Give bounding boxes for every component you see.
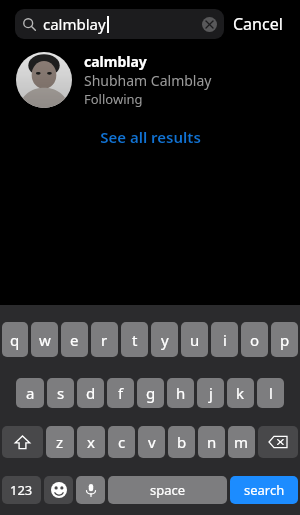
staticText: a bbox=[26, 383, 35, 403]
staticText: t bbox=[132, 330, 138, 350]
staticText: x bbox=[87, 432, 95, 452]
staticText: h bbox=[176, 383, 186, 403]
button[interactable]: f bbox=[107, 378, 134, 408]
button[interactable]: z bbox=[46, 426, 74, 458]
staticText: i bbox=[223, 330, 227, 350]
staticText: q bbox=[10, 330, 20, 350]
staticText: y bbox=[161, 330, 169, 350]
button[interactable]: y bbox=[151, 322, 178, 357]
button[interactable]: o bbox=[241, 322, 268, 357]
button[interactable]: See all results bbox=[0, 122, 300, 152]
staticText: Following bbox=[84, 90, 143, 108]
staticText: z bbox=[56, 432, 64, 452]
staticText: See all results bbox=[100, 127, 201, 147]
staticText: Shubham Calmblay bbox=[84, 71, 212, 90]
staticText: c bbox=[118, 432, 126, 452]
button[interactable]: a bbox=[16, 378, 44, 408]
staticText: k bbox=[236, 383, 245, 403]
staticText: r bbox=[101, 330, 108, 350]
button[interactable]: Shift bbox=[2, 426, 43, 458]
button[interactable]: x bbox=[77, 426, 105, 458]
staticText: p bbox=[280, 330, 290, 350]
button[interactable]: Voice input bbox=[76, 476, 105, 504]
staticText: n bbox=[207, 432, 217, 452]
button[interactable]: space bbox=[108, 476, 227, 504]
button[interactable]: p bbox=[271, 322, 298, 357]
button[interactable]: Clear search text bbox=[202, 17, 217, 32]
staticText: u bbox=[190, 330, 200, 350]
button[interactable]: e bbox=[61, 322, 88, 357]
button[interactable]: r bbox=[91, 322, 118, 357]
button[interactable]: 123 bbox=[2, 476, 41, 504]
button[interactable]: search bbox=[230, 476, 298, 504]
button[interactable]: j bbox=[197, 378, 224, 408]
button[interactable]: s bbox=[47, 378, 74, 408]
staticText: m bbox=[234, 432, 249, 452]
staticText: e bbox=[70, 330, 79, 350]
button[interactable]: h bbox=[167, 378, 194, 408]
staticText: d bbox=[86, 383, 96, 403]
button[interactable]: q bbox=[2, 322, 28, 357]
staticText: calmblay bbox=[84, 52, 147, 71]
staticText: l bbox=[269, 383, 273, 403]
button[interactable]: Backspace bbox=[258, 426, 298, 458]
button[interactable]: c bbox=[108, 426, 135, 458]
button[interactable]: calmblay bbox=[0, 48, 300, 112]
staticText: f bbox=[118, 383, 124, 403]
button[interactable]: l bbox=[257, 378, 284, 408]
staticText: 123 bbox=[10, 481, 33, 499]
staticText: b bbox=[177, 432, 187, 452]
staticText: calmblay bbox=[43, 14, 106, 34]
button[interactable]: calmblay bbox=[15, 9, 224, 39]
button[interactable]: k bbox=[227, 378, 254, 408]
button[interactable]: Cancel bbox=[224, 7, 292, 41]
staticText: space bbox=[150, 481, 186, 499]
button[interactable]: m bbox=[228, 426, 255, 458]
staticText: g bbox=[146, 383, 156, 403]
button[interactable]: v bbox=[138, 426, 165, 458]
button[interactable]: b bbox=[168, 426, 195, 458]
staticText: j bbox=[209, 383, 213, 403]
staticText: search bbox=[244, 481, 285, 499]
button[interactable]: Emoji bbox=[44, 476, 73, 504]
button[interactable]: t bbox=[121, 322, 148, 357]
button[interactable]: i bbox=[211, 322, 238, 357]
staticText: Cancel bbox=[233, 13, 283, 35]
staticText: v bbox=[148, 432, 156, 452]
button[interactable]: n bbox=[198, 426, 225, 458]
staticText: s bbox=[57, 383, 65, 403]
staticText: w bbox=[39, 330, 51, 350]
button[interactable]: d bbox=[77, 378, 104, 408]
button[interactable]: u bbox=[181, 322, 208, 357]
button[interactable]: g bbox=[137, 378, 164, 408]
staticText: o bbox=[250, 330, 260, 350]
button[interactable]: w bbox=[31, 322, 58, 357]
